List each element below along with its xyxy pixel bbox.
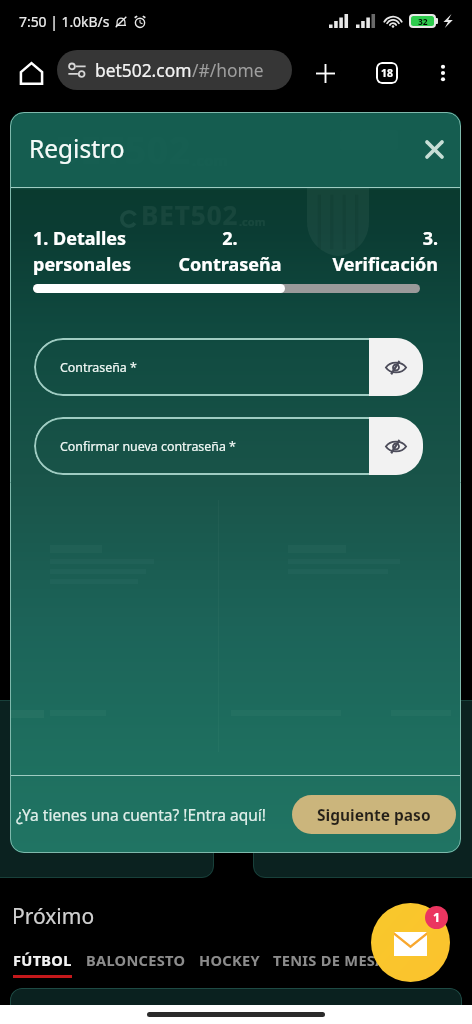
staticText: Contraseña * xyxy=(60,359,137,376)
staticText: 3. Verificación xyxy=(291,226,438,277)
staticText: HOCKEY xyxy=(199,950,260,970)
button[interactable]: More options xyxy=(423,53,463,93)
button[interactable]: Home xyxy=(11,53,51,93)
staticText: BET502 xyxy=(55,124,192,174)
staticText: TENIS DE MESA xyxy=(273,950,386,970)
staticText: BALONCESTO xyxy=(86,950,186,970)
button[interactable]: BALONCESTO xyxy=(86,950,186,975)
button[interactable]: Tabs xyxy=(367,53,407,93)
staticText: Confirmar nueva contraseña * xyxy=(60,438,236,455)
staticText: .com xyxy=(239,214,266,229)
button[interactable]: HOCKEY xyxy=(199,950,260,975)
staticText: 1 xyxy=(433,909,441,926)
button[interactable]: bet502.com xyxy=(57,50,292,90)
staticText: 32 xyxy=(418,16,428,26)
button[interactable]: TENIS DE MESA xyxy=(273,950,386,975)
button[interactable]: Mostrar contraseña xyxy=(369,338,423,396)
button[interactable]: Mensajes xyxy=(371,903,450,982)
staticText: ¿Ya tienes una cuenta? !Entra aquí! xyxy=(16,804,266,825)
staticText: Registro xyxy=(29,132,125,165)
button[interactable]: Siguiente paso xyxy=(292,795,456,834)
button[interactable]: Cerrar xyxy=(417,132,451,166)
staticText: bet502.com xyxy=(95,58,192,82)
staticText: 18 xyxy=(381,66,394,80)
button[interactable]: FÚTBOL xyxy=(13,950,72,978)
staticText: BET502 xyxy=(141,197,239,232)
staticText: Próximo xyxy=(12,902,95,931)
button[interactable]: Mostrar contraseña xyxy=(369,417,423,475)
staticText: Siguiente paso xyxy=(317,804,431,825)
staticText: /#/home xyxy=(192,58,264,82)
button[interactable]: New tab xyxy=(305,53,345,93)
staticText: 2. Contraseña xyxy=(169,226,291,277)
staticText: FÚTBOL xyxy=(13,950,72,970)
staticText: 7:50 | 1.0kB/s xyxy=(19,12,110,31)
button[interactable]: ¿Ya tienes una cuenta? !Entra aquí! xyxy=(15,804,267,825)
staticText: 1. Detalles personales xyxy=(33,226,169,277)
